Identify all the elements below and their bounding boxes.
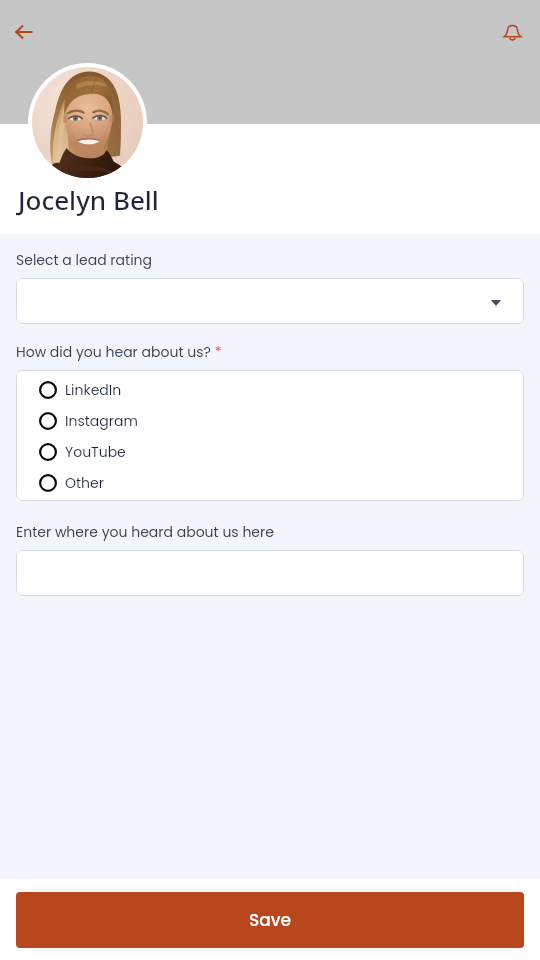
staticText: Select a lead rating [16,250,152,270]
button[interactable]: YouTube [16,436,524,467]
button[interactable]: Enter where you heard about us here [16,550,524,596]
button[interactable]: Back [8,16,40,48]
staticText: How did you hear about us? [16,342,211,362]
staticText: Enter where you heard about us here [16,522,274,542]
button[interactable]: Instagram [16,405,524,436]
button[interactable]: LinkedIn [16,374,524,405]
button[interactable]: Other [16,467,524,498]
staticText: Instagram [65,411,138,431]
staticText: * [211,342,222,362]
button[interactable]: Notifications [496,16,528,48]
button[interactable]: Select a lead rating [16,278,524,324]
staticText: YouTube [65,442,126,462]
staticText: Save [249,908,292,932]
button[interactable]: Save [16,892,524,948]
staticText: Other [65,473,104,493]
staticText: LinkedIn [65,380,122,400]
staticText: Jocelyn Bell [18,182,159,217]
